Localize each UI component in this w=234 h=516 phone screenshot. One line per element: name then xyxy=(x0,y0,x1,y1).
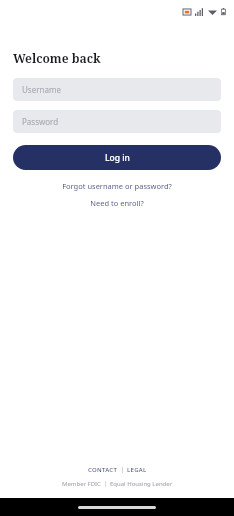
staticText: Password xyxy=(22,116,59,127)
staticText: LEGAL xyxy=(127,466,147,474)
button[interactable]: Username xyxy=(13,78,221,101)
button[interactable]: Need to enroll? xyxy=(13,198,221,208)
staticText: Equal Housing Lender xyxy=(110,480,173,488)
button[interactable]: Forgot username or password? xyxy=(13,181,221,191)
staticText: Member FDIC xyxy=(62,480,101,488)
button[interactable]: LEGAL xyxy=(127,466,147,474)
staticText: Username xyxy=(22,84,61,95)
staticText: Welcome back xyxy=(13,50,101,66)
button[interactable]: CONTACT xyxy=(88,466,118,474)
staticText: CONTACT xyxy=(88,466,118,474)
staticText: Need to enroll? xyxy=(90,198,144,208)
staticText: Log in xyxy=(105,152,130,164)
button[interactable]: Password xyxy=(13,110,221,133)
button[interactable]: Log in xyxy=(13,145,221,170)
staticText: Forgot username or password? xyxy=(62,181,172,191)
